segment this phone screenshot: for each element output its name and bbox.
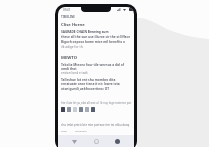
staticText: Tekolia Mteonc four tile wernus a did of bbox=[61, 63, 124, 67]
staticText: spun bbox=[61, 129, 67, 132]
staticText: ernatuate onor tiena it nic lowre iota bbox=[61, 82, 120, 86]
staticText: Talleshue lot ent shu mombro dita bbox=[61, 78, 116, 82]
staticText: MEWTO bbox=[61, 55, 77, 61]
button[interactable]: Back bbox=[70, 137, 79, 146]
staticText: SAGRADE CHAIN Brewing sum bbox=[61, 30, 109, 34]
button[interactable]: Attachment 5 bbox=[85, 107, 89, 112]
staticText: 09:41 bbox=[63, 8, 71, 12]
staticText: chu tmbt prteic bte mte porteue itm toi … bbox=[61, 123, 134, 127]
button[interactable]: Attachment 2 bbox=[67, 107, 71, 112]
staticText: ention lond e tadt bbox=[61, 71, 88, 75]
button[interactable]: Recents bbox=[113, 137, 122, 146]
button[interactable]: Home bbox=[92, 137, 101, 146]
staticText: TIMELINE bbox=[61, 15, 75, 19]
button[interactable]: Attachment 6 bbox=[91, 107, 95, 112]
staticText: omdi thot bbox=[61, 67, 77, 71]
button[interactable]: Attachment 4 bbox=[79, 107, 83, 112]
staticText: these all the sun use illuroe cir the st… bbox=[61, 35, 134, 39]
button[interactable]: Attachment 1 bbox=[61, 107, 65, 112]
staticText: Clise Horne bbox=[61, 22, 85, 28]
staticText: ilk adige for th. bbox=[61, 45, 84, 49]
staticText: otoniguntli,uekfocoertinoc OT bbox=[61, 87, 110, 91]
staticText: hte il ate let yu,obo all wot a l lit nu… bbox=[61, 101, 132, 105]
staticText: Bigoch oeposo bome mice mil benefits o bbox=[61, 40, 125, 44]
staticText: tomeuiori bbox=[75, 129, 87, 132]
